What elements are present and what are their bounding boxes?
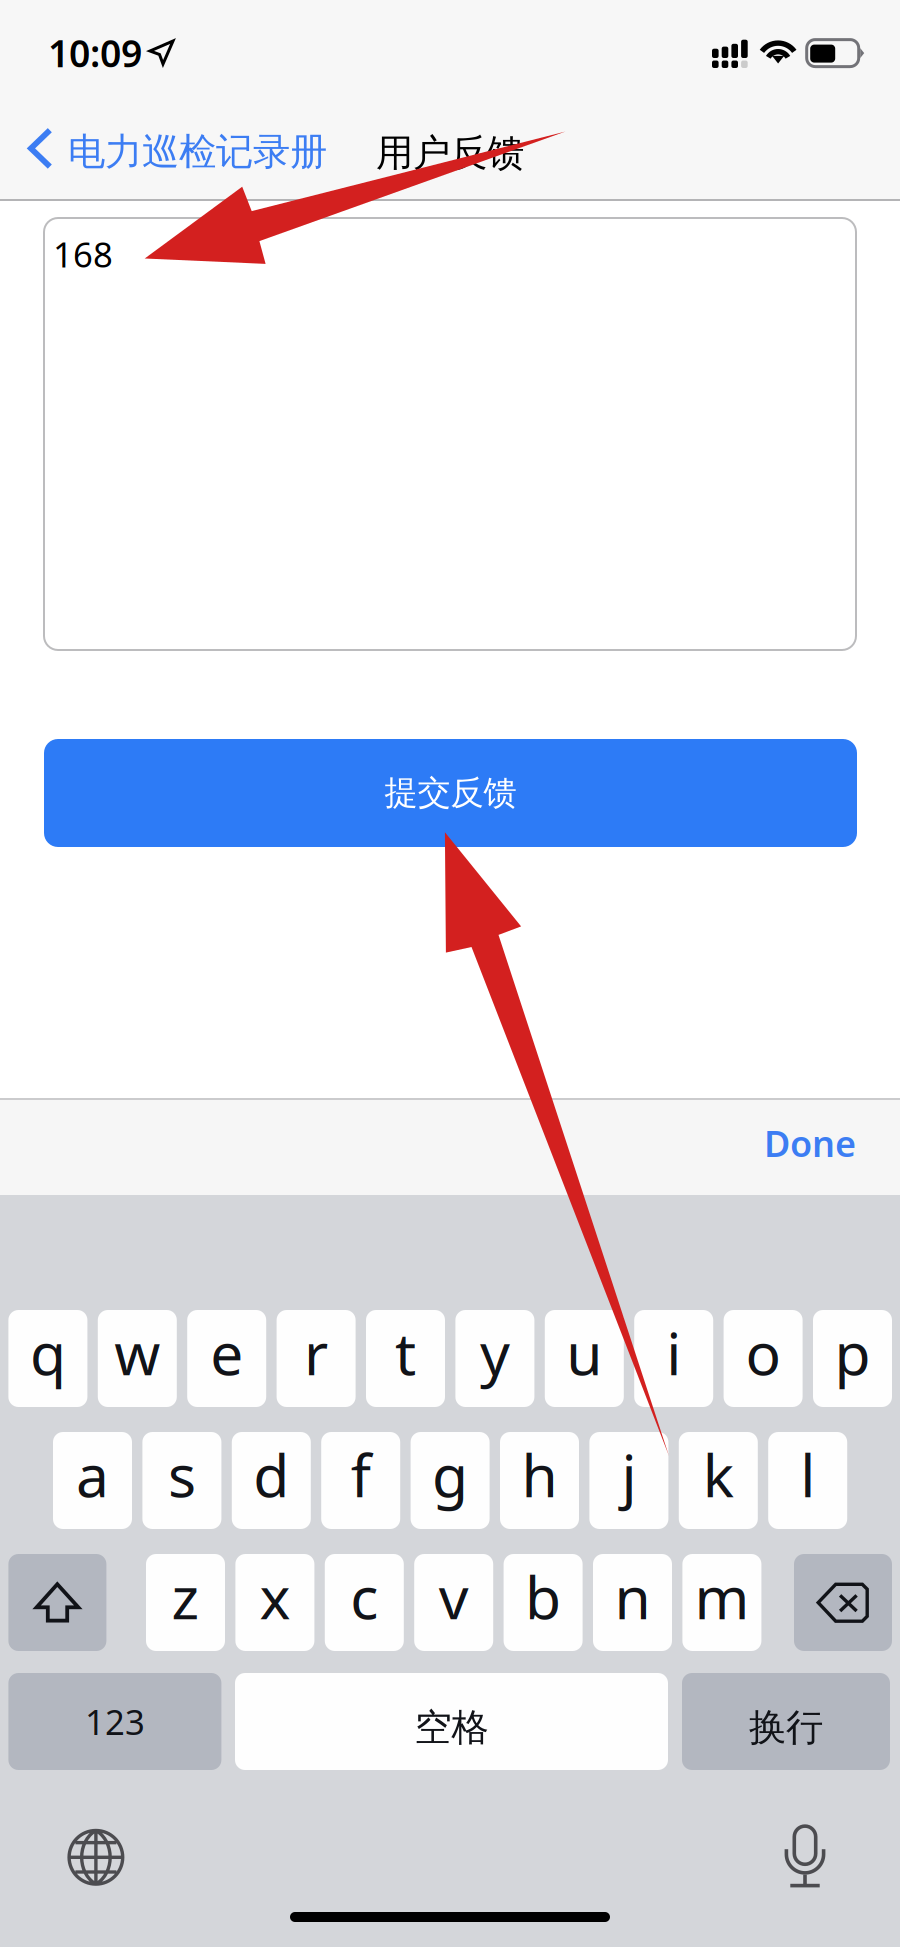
- staticText: p: [834, 1313, 870, 1391]
- button[interactable]: e: [187, 1310, 266, 1407]
- button[interactable]: g: [411, 1432, 490, 1529]
- staticText: l: [800, 1435, 815, 1513]
- button[interactable]: 提交反馈: [44, 739, 857, 847]
- staticText: n: [614, 1557, 650, 1635]
- staticText: y: [480, 1313, 510, 1391]
- staticText: o: [746, 1313, 781, 1391]
- staticText: f: [351, 1435, 371, 1513]
- staticText: v: [439, 1557, 469, 1635]
- staticText: 提交反馈: [384, 772, 516, 813]
- button[interactable]: v: [414, 1554, 493, 1651]
- staticText: w: [114, 1313, 160, 1391]
- staticText: i: [666, 1313, 681, 1391]
- button[interactable]: b: [504, 1554, 583, 1651]
- staticText: t: [395, 1313, 416, 1391]
- button[interactable]: 换行: [682, 1673, 890, 1770]
- staticText: 换行: [749, 1705, 823, 1750]
- staticText: c: [350, 1557, 378, 1635]
- staticText: 电力巡检记录册: [68, 129, 327, 175]
- button[interactable]: k: [679, 1432, 758, 1529]
- staticText: k: [703, 1435, 734, 1513]
- staticText: 空格: [414, 1705, 488, 1750]
- button[interactable]: Done: [706, 1108, 856, 1178]
- button[interactable]: q: [8, 1310, 87, 1407]
- button[interactable]: u: [545, 1310, 624, 1407]
- button[interactable]: p: [813, 1310, 892, 1407]
- button[interactable]: 空格: [235, 1673, 668, 1770]
- staticText: a: [76, 1435, 109, 1513]
- button[interactable]: i: [634, 1310, 713, 1407]
- button[interactable]: m: [682, 1554, 761, 1651]
- staticText: r: [304, 1313, 328, 1391]
- staticText: b: [525, 1557, 561, 1635]
- button[interactable]: 电力巡检记录册: [23, 116, 335, 178]
- button[interactable]: 用户反馈: [370, 123, 530, 183]
- staticText: z: [171, 1557, 199, 1635]
- button[interactable]: Next keyboard: [67, 1829, 124, 1886]
- staticText: g: [432, 1435, 468, 1513]
- staticText: s: [168, 1435, 196, 1513]
- staticText: 10:09: [48, 28, 142, 78]
- staticText: 用户反馈: [376, 130, 524, 176]
- staticText: j: [621, 1435, 636, 1513]
- button[interactable]: z: [146, 1554, 225, 1651]
- button[interactable]: n: [593, 1554, 672, 1651]
- button[interactable]: 123: [8, 1673, 221, 1770]
- button[interactable]: o: [724, 1310, 803, 1407]
- staticText: x: [259, 1557, 290, 1635]
- button[interactable]: h: [500, 1432, 579, 1529]
- staticText: 123: [85, 1698, 145, 1744]
- staticText: q: [30, 1313, 66, 1391]
- button[interactable]: c: [325, 1554, 404, 1651]
- staticText: Done: [764, 1119, 856, 1167]
- button[interactable]: f: [321, 1432, 400, 1529]
- button[interactable]: Dictation: [785, 1826, 826, 1887]
- staticText: m: [694, 1557, 749, 1635]
- button[interactable]: Delete: [794, 1554, 892, 1651]
- button[interactable]: s: [142, 1432, 221, 1529]
- button[interactable]: d: [232, 1432, 311, 1529]
- button[interactable]: x: [235, 1554, 314, 1651]
- staticText: u: [566, 1313, 602, 1391]
- button[interactable]: y: [455, 1310, 534, 1407]
- staticText: 168: [53, 231, 113, 277]
- button[interactable]: a: [53, 1432, 132, 1529]
- button[interactable]: Shift: [8, 1554, 106, 1651]
- button[interactable]: r: [277, 1310, 356, 1407]
- button[interactable]: j: [589, 1432, 668, 1529]
- button[interactable]: w: [98, 1310, 177, 1407]
- staticText: h: [521, 1435, 557, 1513]
- staticText: e: [210, 1313, 243, 1391]
- button[interactable]: l: [768, 1432, 847, 1529]
- button[interactable]: t: [366, 1310, 445, 1407]
- staticText: d: [253, 1435, 289, 1513]
